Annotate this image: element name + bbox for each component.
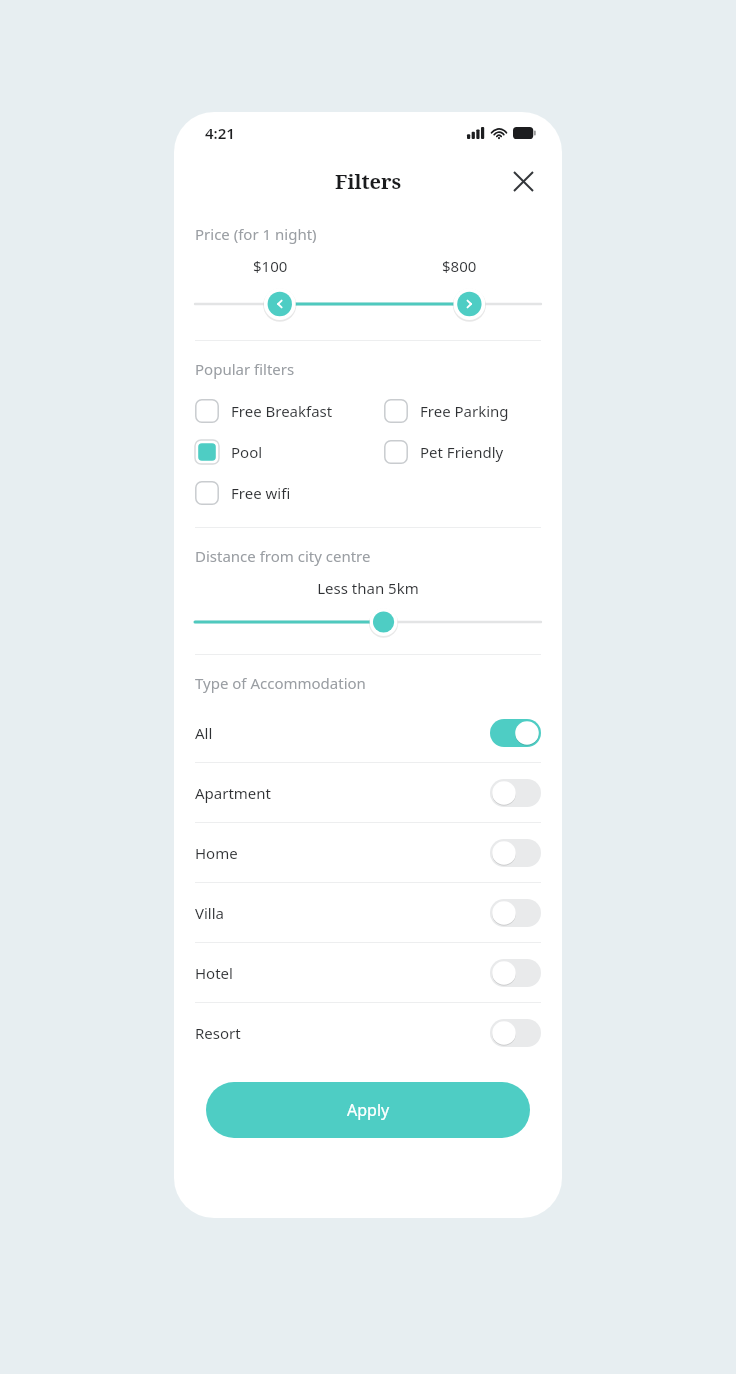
button[interactable]: Home: [174, 823, 562, 882]
button[interactable]: Free wifi: [195, 472, 384, 513]
button[interactable]: Close: [506, 164, 540, 198]
staticText: Free Parking: [420, 401, 509, 421]
button[interactable]: Resort: [174, 1003, 562, 1062]
staticText: Free Breakfast: [231, 401, 333, 421]
button[interactable]: Apply: [206, 1082, 530, 1138]
staticText: Hotel: [195, 963, 490, 983]
staticText: Price (for 1 night): [195, 224, 317, 244]
staticText: $800: [442, 256, 477, 276]
staticText: Apartment: [195, 783, 490, 803]
staticText: 4:21: [205, 123, 235, 143]
staticText: $100: [253, 256, 288, 276]
staticText: Filters: [335, 168, 402, 195]
staticText: Apply: [347, 1099, 390, 1121]
button[interactable]: Free Breakfast: [195, 390, 384, 431]
staticText: Villa: [195, 903, 490, 923]
button[interactable]: Free Parking: [384, 390, 509, 431]
staticText: Distance from city centre: [195, 546, 371, 566]
staticText: All: [195, 723, 490, 743]
button[interactable]: All: [174, 703, 562, 762]
staticText: Type of Accommodation: [195, 673, 366, 693]
button[interactable]: Price range slider: [174, 286, 562, 322]
staticText: Pool: [231, 442, 263, 462]
staticText: Popular filters: [195, 359, 295, 379]
button[interactable]: Pet Friendly: [384, 431, 504, 472]
staticText: Resort: [195, 1023, 490, 1043]
staticText: Free wifi: [231, 483, 291, 503]
staticText: Less than 5km: [174, 578, 562, 598]
button[interactable]: Villa: [174, 883, 562, 942]
button[interactable]: Apartment: [174, 763, 562, 822]
staticText: Home: [195, 843, 490, 863]
button[interactable]: Hotel: [174, 943, 562, 1002]
button[interactable]: Distance slider: [174, 606, 562, 638]
button[interactable]: Pool: [195, 431, 384, 472]
staticText: Pet Friendly: [420, 442, 504, 462]
